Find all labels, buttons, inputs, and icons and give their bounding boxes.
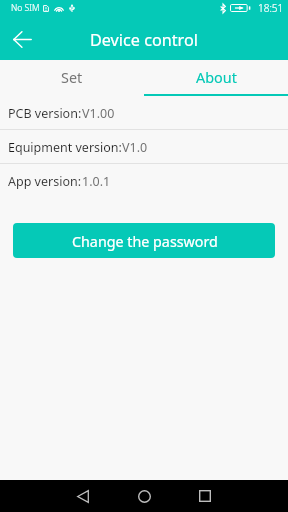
button[interactable]: Change the password <box>13 223 275 258</box>
button[interactable]: Home <box>128 480 160 512</box>
button[interactable]: Back <box>67 480 99 512</box>
staticText: Change the password <box>72 232 218 251</box>
staticText: About <box>196 68 237 88</box>
button[interactable]: Equipment version: <box>0 130 288 164</box>
staticText: 1.0.1 <box>82 173 111 190</box>
staticText: PCB version: <box>8 105 82 122</box>
staticText: Set <box>61 68 83 88</box>
button[interactable]: About <box>144 60 288 96</box>
staticText: Device control <box>90 29 198 51</box>
button[interactable]: Recent apps <box>189 480 221 512</box>
button[interactable]: PCB version: <box>0 96 288 130</box>
staticText: Equipment version: <box>8 139 122 156</box>
staticText: No SIM <box>11 2 40 14</box>
staticText: V1.00 <box>82 105 115 122</box>
staticText: 18:51 <box>258 1 284 15</box>
button[interactable]: Set <box>0 60 144 96</box>
staticText: App version: <box>8 173 82 190</box>
button[interactable]: Back <box>4 20 40 56</box>
button[interactable]: App version: <box>0 164 288 198</box>
staticText: V1.0 <box>122 139 148 156</box>
